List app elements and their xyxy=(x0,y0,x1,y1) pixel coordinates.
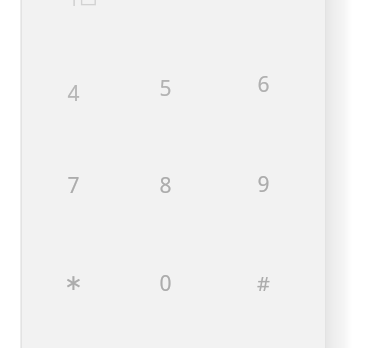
staticText: 8 xyxy=(159,171,172,200)
button[interactable]: 6 xyxy=(227,48,299,120)
staticText: # xyxy=(257,270,270,297)
button[interactable]: 7 xyxy=(37,149,109,221)
staticText: 6 xyxy=(257,70,270,99)
button[interactable]: One, voicemail xyxy=(55,0,115,6)
button[interactable]: 9 xyxy=(227,148,299,220)
staticText: 7 xyxy=(67,171,80,200)
staticText: 9 xyxy=(257,170,270,199)
button[interactable]: 8 xyxy=(129,149,201,221)
button[interactable]: ∗ xyxy=(37,247,109,319)
staticText: ∗ xyxy=(64,270,83,296)
staticText: 5 xyxy=(159,74,172,103)
button[interactable]: 4 xyxy=(37,57,109,129)
staticText: 0 xyxy=(159,269,172,298)
button[interactable]: 5 xyxy=(129,52,201,124)
button[interactable]: # xyxy=(227,247,299,319)
staticText: 4 xyxy=(67,79,80,108)
button[interactable]: 0 xyxy=(129,247,201,319)
